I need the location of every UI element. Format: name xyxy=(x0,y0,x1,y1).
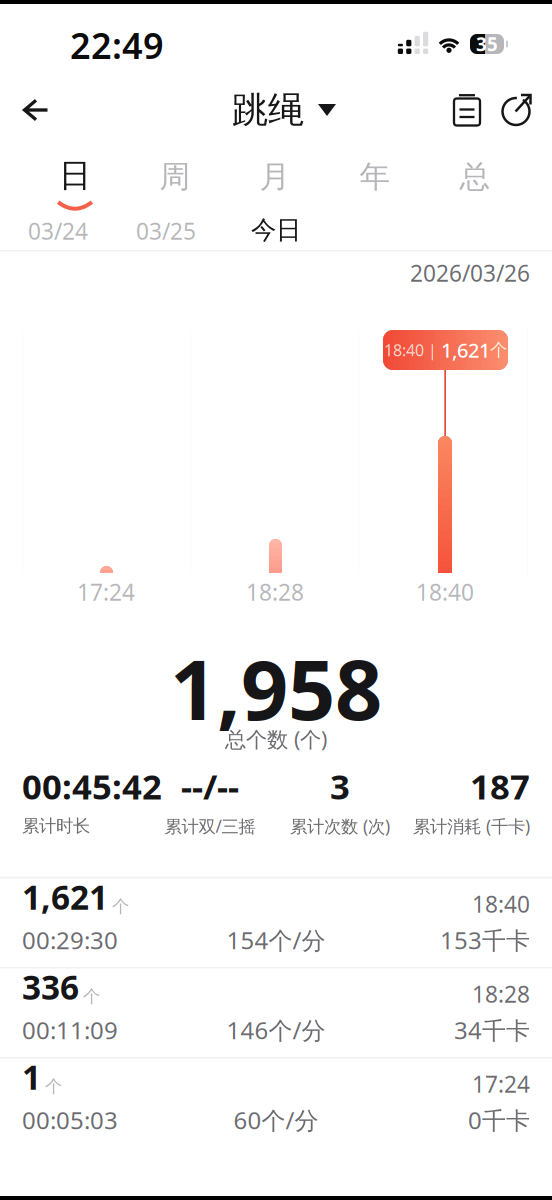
staticText: 18:40 xyxy=(384,339,424,361)
staticText: 00:29:30 xyxy=(22,924,118,956)
button[interactable]: Share xyxy=(0,0,40,42)
staticText: 22:49 xyxy=(70,21,164,69)
staticText: 00:05:03 xyxy=(22,1104,118,1136)
staticText: 月 xyxy=(259,158,290,196)
staticText: 153千卡 xyxy=(440,924,530,956)
staticText: 146个/分 xyxy=(226,1014,325,1046)
button[interactable]: 03/25 xyxy=(0,0,108,30)
staticText: 34千卡 xyxy=(454,1014,530,1046)
staticText: 60个/分 xyxy=(233,1104,318,1136)
button[interactable]: 336 xyxy=(0,967,552,1057)
staticText: 00:45:42 xyxy=(22,763,162,809)
staticText: 00:11:09 xyxy=(22,1014,118,1046)
staticText: 0千卡 xyxy=(468,1104,530,1136)
button[interactable]: 日 xyxy=(0,0,100,50)
staticText: 3 xyxy=(330,763,350,809)
staticText: 03/24 xyxy=(28,216,88,246)
button[interactable]: 今日 xyxy=(0,0,108,30)
button[interactable]: 周 xyxy=(0,0,100,30)
staticText: 周 xyxy=(159,158,190,196)
staticText: 35 xyxy=(476,32,498,56)
button[interactable]: 月 xyxy=(0,0,100,30)
staticText: 日 xyxy=(59,156,91,195)
staticText: 总 xyxy=(459,158,490,196)
button[interactable]: Records xyxy=(0,0,40,42)
staticText: 总个数 (个) xyxy=(225,725,327,753)
staticText: 个 xyxy=(83,986,100,1007)
staticText: 累计时长 xyxy=(22,815,90,837)
button[interactable]: Back xyxy=(0,0,56,52)
staticText: --/-- xyxy=(181,763,239,809)
staticText: 1,621 xyxy=(22,875,108,919)
button[interactable]: 1,621 xyxy=(0,877,552,967)
button[interactable]: 03/24 xyxy=(0,0,108,30)
staticText: 03/25 xyxy=(136,216,196,246)
staticText: 18:28 xyxy=(472,979,530,1009)
staticText: 2026/03/26 xyxy=(410,258,530,288)
button[interactable]: 跳绳 xyxy=(0,0,110,44)
staticText: 154个/分 xyxy=(226,924,325,956)
staticText: 336 xyxy=(22,965,79,1009)
staticText: 1,958 xyxy=(170,633,382,743)
staticText: | xyxy=(424,339,441,361)
button[interactable]: 年 xyxy=(0,0,100,30)
staticText: 187 xyxy=(470,763,530,809)
staticText: 累计消耗 (千卡) xyxy=(413,814,530,837)
staticText: 18:28 xyxy=(246,577,304,607)
staticText: 个 xyxy=(112,896,129,917)
button[interactable]: 总 xyxy=(0,0,100,30)
staticText: 跳绳 xyxy=(232,88,304,132)
staticText: 1 xyxy=(22,1055,41,1099)
staticText: 17:24 xyxy=(77,577,135,607)
staticText: 个 xyxy=(490,339,507,361)
staticText: 年 xyxy=(359,158,390,196)
staticText: 18:40 xyxy=(416,577,474,607)
staticText: 今日 xyxy=(251,214,301,245)
button[interactable]: 1 xyxy=(0,1057,552,1147)
staticText: 17:24 xyxy=(472,1069,530,1099)
staticText: 个 xyxy=(45,1076,62,1097)
staticText: 累计次数 (次) xyxy=(290,814,390,837)
staticText: 累计双/三摇 xyxy=(164,814,255,837)
staticText: 18:40 xyxy=(472,889,530,919)
staticText: 1,621 xyxy=(441,337,490,363)
